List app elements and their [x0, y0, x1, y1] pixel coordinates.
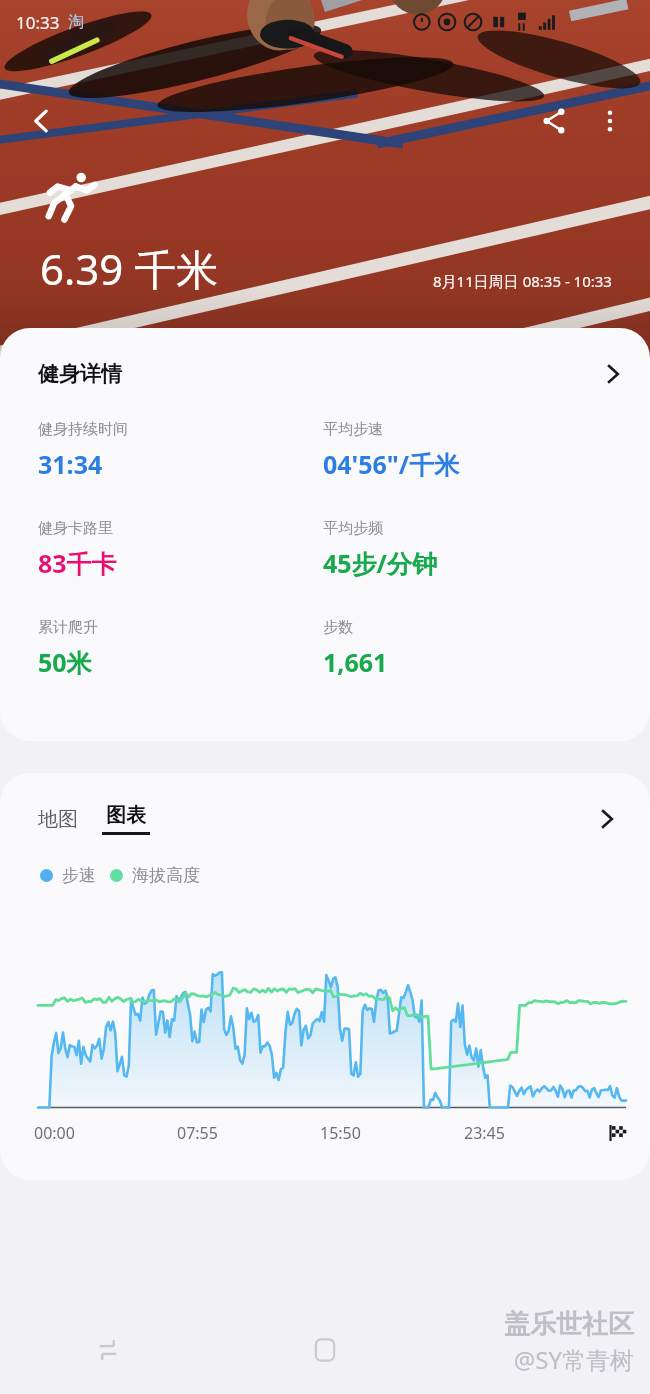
- staticText: 15:50: [320, 1122, 464, 1144]
- staticText: 图表: [106, 803, 146, 828]
- staticText: 1,661: [323, 645, 388, 679]
- staticText: 健身详情: [38, 361, 122, 387]
- staticText: 00:00: [34, 1122, 177, 1144]
- staticText: 10:33: [16, 11, 60, 34]
- staticText: 04'56"/千米: [323, 447, 460, 481]
- staticText: 平均步频: [323, 519, 383, 538]
- button[interactable]: 地图: [36, 801, 80, 838]
- button[interactable]: Open chart: [590, 802, 624, 836]
- staticText: 淘: [68, 12, 84, 32]
- staticText: 海拔高度: [132, 865, 200, 886]
- button[interactable]: 健身详情: [0, 328, 650, 420]
- staticText: 83千卡: [38, 546, 117, 580]
- staticText: 平均步速: [323, 420, 383, 439]
- staticText: 50米: [38, 645, 92, 679]
- button[interactable]: Share: [526, 93, 582, 149]
- staticText: 23:45: [464, 1122, 608, 1144]
- staticText: 累计爬升: [38, 618, 98, 637]
- staticText: 07:55: [177, 1122, 320, 1144]
- staticText: 地图: [38, 807, 78, 832]
- staticText: 31:34: [38, 447, 103, 481]
- staticText: 盖乐世社区: [504, 1308, 634, 1341]
- staticText: 步数: [323, 618, 353, 637]
- button[interactable]: Back: [433, 1306, 650, 1394]
- staticText: 8月11日周日 08:35 - 10:33: [433, 271, 612, 291]
- staticText: 健身卡路里: [38, 519, 113, 538]
- button[interactable]: Back: [14, 93, 70, 149]
- button[interactable]: More options: [582, 93, 638, 149]
- button[interactable]: Home: [216, 1306, 433, 1394]
- staticText: @SY常青树: [513, 1343, 634, 1376]
- staticText: 健身持续时间: [38, 420, 128, 439]
- staticText: 步速: [62, 865, 96, 886]
- staticText: 45步/分钟: [323, 546, 437, 580]
- staticText: 6.39 千米: [40, 240, 219, 297]
- button[interactable]: 图表: [102, 803, 150, 835]
